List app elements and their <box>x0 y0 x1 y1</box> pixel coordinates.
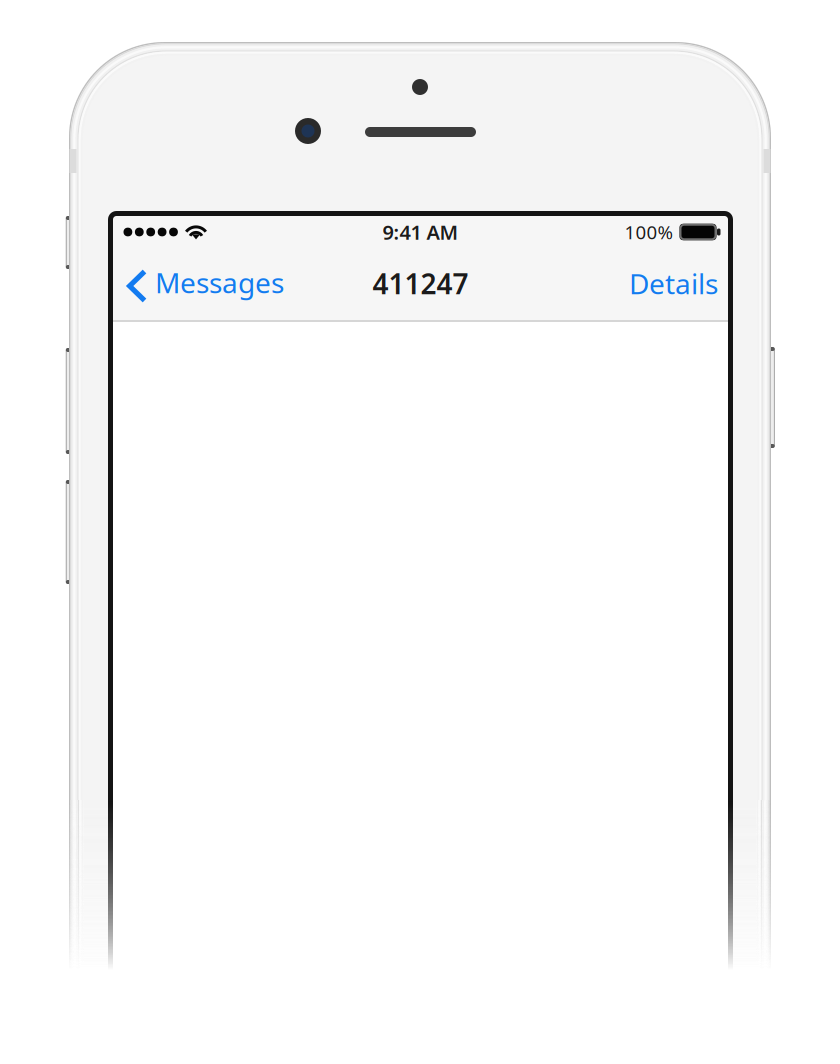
staticText: 100% <box>624 220 673 244</box>
button[interactable]: Messages <box>127 269 284 306</box>
staticText: 9:41 AM <box>382 219 458 245</box>
staticText: 411247 <box>372 265 468 302</box>
staticText: Messages <box>155 264 284 301</box>
staticText: Details <box>629 265 718 302</box>
button[interactable]: Details <box>629 269 718 306</box>
